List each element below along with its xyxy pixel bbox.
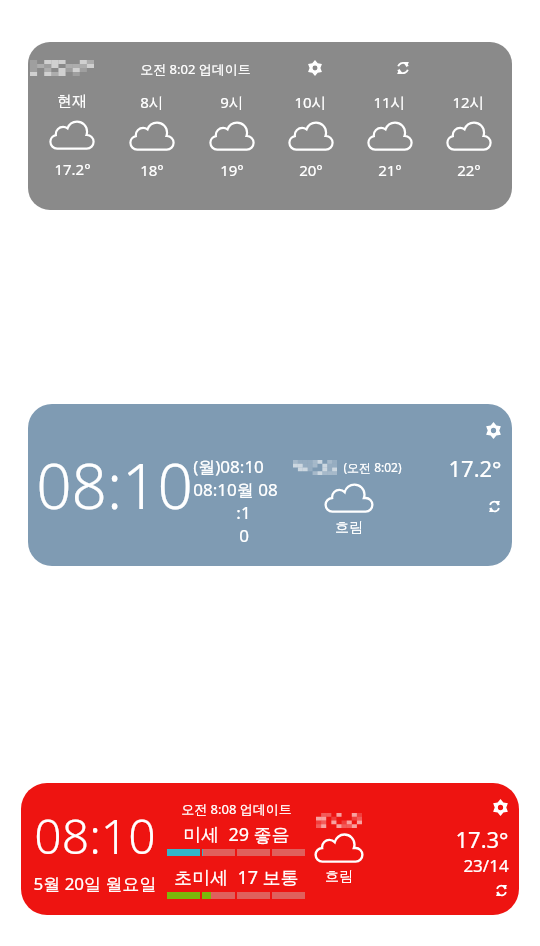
button[interactable]: 11시	[350, 92, 429, 180]
staticText: 08:10	[34, 803, 156, 868]
staticText: 5월 20일 월요일	[33, 872, 157, 895]
staticText: 20°	[299, 160, 323, 180]
staticText: (오전 8:02)	[343, 459, 402, 475]
staticText: (월)08:10	[193, 455, 264, 478]
staticText: 초미세 17 보통	[174, 865, 299, 890]
button[interactable]: 오전 8:02 업데이트	[28, 42, 512, 210]
staticText: 08:10	[36, 443, 193, 527]
staticText: 현재	[57, 92, 87, 111]
button[interactable]: Settings	[307, 60, 323, 76]
button[interactable]: 12시	[429, 92, 508, 180]
staticText: :1	[236, 501, 251, 524]
button[interactable]: 8시	[112, 92, 192, 180]
staticText: 8시	[140, 92, 164, 112]
button[interactable]: Refresh	[494, 883, 509, 898]
button[interactable]: Refresh	[487, 499, 502, 514]
button[interactable]: Refresh	[395, 60, 411, 76]
staticText: 21°	[378, 160, 402, 180]
staticText: 23/14	[463, 854, 509, 877]
button[interactable]: 10시	[271, 92, 350, 180]
staticText: 11시	[373, 92, 406, 112]
button[interactable]: 9시	[192, 92, 271, 180]
staticText: 17.2°	[448, 453, 502, 483]
staticText: 오전 8:02 업데이트	[140, 60, 251, 76]
button[interactable]: Settings	[492, 799, 509, 816]
staticText: 12시	[452, 92, 485, 112]
staticText: 18°	[140, 160, 164, 180]
staticText: 17.3°	[455, 824, 509, 854]
staticText: 22°	[457, 160, 481, 180]
staticText: 오전 8:08 업데이트	[181, 800, 292, 818]
button[interactable]: Settings	[485, 422, 502, 439]
staticText: 미세 29 좋음	[183, 822, 290, 847]
staticText: 0	[239, 524, 249, 547]
button[interactable]: 08:10	[21, 783, 519, 915]
staticText: 08:10월 08	[193, 478, 278, 501]
staticText: 17.2°	[54, 159, 91, 179]
staticText: 흐림	[325, 868, 353, 886]
staticText: 흐림	[335, 519, 363, 537]
staticText: 19°	[220, 160, 244, 180]
staticText: 10시	[294, 92, 327, 112]
staticText: 9시	[220, 92, 244, 112]
button[interactable]: 08:10	[28, 404, 512, 566]
button[interactable]: 현재	[32, 92, 112, 179]
